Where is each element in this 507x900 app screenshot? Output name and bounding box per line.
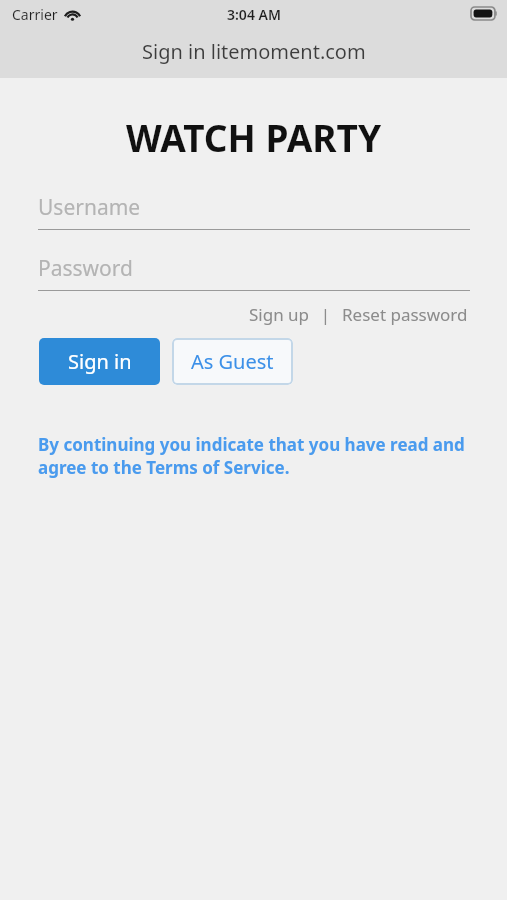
staticText: Password bbox=[38, 254, 133, 283]
button[interactable]: By continuing you indicate that you have… bbox=[38, 433, 467, 479]
button[interactable]: As Guest bbox=[172, 338, 293, 385]
staticText: Reset password bbox=[342, 303, 468, 326]
staticText: Sign in litemoment.com bbox=[142, 38, 366, 65]
staticText: Sign in bbox=[68, 348, 132, 375]
button[interactable]: Username bbox=[38, 193, 470, 230]
button[interactable]: Sign up bbox=[247, 301, 312, 328]
staticText: Username bbox=[38, 193, 141, 222]
button[interactable]: Password bbox=[38, 254, 470, 291]
button[interactable]: Reset password bbox=[340, 301, 470, 328]
staticText: | bbox=[312, 303, 340, 326]
staticText: Sign up bbox=[249, 303, 310, 326]
staticText: As Guest bbox=[191, 348, 274, 375]
staticText: 3:04 AM bbox=[227, 5, 281, 24]
button[interactable]: Sign in bbox=[39, 338, 160, 385]
staticText: Carrier bbox=[12, 5, 58, 24]
staticText: By continuing you indicate that you have… bbox=[38, 433, 467, 479]
staticText: WATCH PARTY bbox=[0, 112, 507, 162]
